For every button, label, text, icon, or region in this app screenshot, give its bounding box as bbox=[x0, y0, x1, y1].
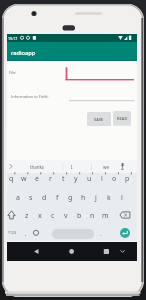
button[interactable]: u bbox=[83, 171, 95, 186]
button[interactable]: q bbox=[5, 171, 17, 186]
button[interactable]: o bbox=[108, 171, 120, 186]
staticText: b bbox=[77, 211, 82, 221]
button[interactable] bbox=[69, 88, 134, 102]
staticText: a bbox=[16, 193, 20, 203]
staticText: p bbox=[125, 174, 130, 184]
button[interactable] bbox=[65, 66, 134, 81]
button[interactable]: c bbox=[47, 208, 59, 223]
button[interactable]: s bbox=[25, 190, 37, 205]
staticText: y bbox=[74, 174, 78, 184]
button[interactable]: j bbox=[90, 190, 102, 205]
staticText: q bbox=[9, 174, 14, 184]
button[interactable] bbox=[7, 208, 21, 223]
staticText: 19:17 bbox=[8, 36, 18, 41]
button[interactable] bbox=[33, 228, 39, 239]
button[interactable] bbox=[117, 208, 132, 223]
staticText: k bbox=[107, 193, 111, 203]
button[interactable]: e bbox=[31, 171, 43, 186]
button[interactable]: f bbox=[51, 190, 63, 205]
button[interactable]: w bbox=[18, 171, 30, 186]
button[interactable]: k bbox=[103, 190, 115, 205]
staticText: File: bbox=[9, 70, 17, 75]
staticText: o bbox=[112, 174, 117, 184]
staticText: s bbox=[29, 193, 33, 203]
button[interactable] bbox=[100, 245, 113, 258]
staticText: j bbox=[95, 193, 97, 203]
button[interactable] bbox=[30, 245, 43, 258]
staticText: thanks bbox=[30, 164, 44, 170]
staticText: r bbox=[49, 174, 52, 184]
button[interactable]: l bbox=[116, 190, 128, 205]
button[interactable]: I bbox=[67, 163, 76, 170]
button[interactable]: h bbox=[77, 190, 89, 205]
staticText: f bbox=[56, 193, 59, 203]
staticText: w bbox=[21, 174, 27, 184]
staticText: radioapp bbox=[11, 49, 36, 57]
staticText: we bbox=[103, 164, 109, 170]
staticText: I bbox=[71, 164, 73, 170]
staticText: d bbox=[42, 193, 47, 203]
button[interactable]: ?123 bbox=[5, 229, 19, 236]
staticText: SAVE bbox=[94, 117, 104, 122]
button[interactable]: x bbox=[34, 208, 46, 223]
staticText: READ bbox=[117, 116, 128, 121]
button[interactable] bbox=[7, 42, 137, 61]
button[interactable]: n bbox=[86, 208, 98, 223]
button[interactable]: z bbox=[21, 208, 33, 223]
button[interactable]: y bbox=[70, 171, 82, 186]
staticText: e bbox=[35, 174, 39, 184]
button[interactable]: a bbox=[12, 190, 24, 205]
button[interactable]: p bbox=[121, 171, 133, 186]
button[interactable] bbox=[120, 228, 130, 238]
staticText: x bbox=[38, 211, 42, 221]
staticText: v bbox=[64, 211, 68, 221]
button[interactable] bbox=[52, 229, 94, 239]
staticText: h bbox=[81, 193, 86, 203]
staticText: z bbox=[25, 211, 29, 221]
button[interactable]: . bbox=[98, 229, 104, 238]
button[interactable]: b bbox=[73, 208, 85, 223]
button[interactable]: thanks bbox=[25, 163, 48, 170]
button[interactable]: m bbox=[99, 208, 111, 223]
button[interactable]: SAVE bbox=[87, 112, 111, 126]
button[interactable]: r bbox=[44, 171, 56, 186]
staticText: g bbox=[68, 193, 73, 203]
button[interactable] bbox=[65, 245, 78, 258]
button[interactable]: we bbox=[99, 163, 113, 170]
button[interactable]: READ bbox=[113, 111, 131, 125]
staticText: ?123 bbox=[8, 230, 17, 235]
staticText: . bbox=[100, 230, 102, 238]
staticText: l bbox=[121, 193, 123, 203]
staticText: , bbox=[25, 230, 27, 238]
button[interactable]: v bbox=[60, 208, 72, 223]
button[interactable]: , bbox=[23, 230, 29, 238]
staticText: t bbox=[62, 174, 65, 184]
staticText: u bbox=[87, 174, 92, 184]
staticText: m bbox=[102, 211, 109, 221]
staticText: n bbox=[90, 211, 95, 221]
button[interactable]: g bbox=[64, 190, 76, 205]
button[interactable]: d bbox=[38, 190, 50, 205]
staticText: c bbox=[51, 211, 55, 221]
button[interactable]: i bbox=[96, 171, 108, 186]
button[interactable]: t bbox=[57, 171, 69, 186]
staticText: Information to Field: bbox=[11, 94, 49, 99]
staticText: i bbox=[101, 174, 103, 184]
